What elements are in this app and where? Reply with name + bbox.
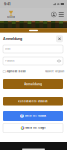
staticText: Email	[5, 47, 11, 50]
button[interactable]: Angemeldet bleiben	[3, 70, 25, 73]
staticText: Anmeldung	[24, 82, 42, 86]
staticText: f	[21, 113, 23, 119]
staticText: Passwort	[5, 59, 15, 62]
button[interactable]: Anmeldung	[3, 79, 63, 89]
button[interactable]: Close	[56, 35, 63, 42]
staticText: Weiter mit Facebook	[25, 115, 46, 117]
button[interactable]: Kundenkonto erstellen	[3, 97, 63, 105]
button[interactable]: Account	[50, 10, 57, 19]
staticText: Weiter mit Google	[25, 127, 45, 129]
staticText: Passwort vergessen	[45, 70, 64, 73]
button[interactable]: f	[3, 111, 63, 121]
staticText: BRASSERIE	[7, 16, 15, 18]
button[interactable]: Passwort vergessen	[45, 70, 64, 73]
staticText: Angemeldet bleiben	[6, 70, 25, 73]
button[interactable]: Menu	[57, 10, 65, 19]
staticText: Kundenkonto erstellen	[18, 100, 48, 103]
staticText: Anmeldung	[3, 37, 22, 41]
button[interactable]: Weiter mit Google	[3, 123, 63, 132]
staticText: 9:41	[4, 2, 10, 6]
